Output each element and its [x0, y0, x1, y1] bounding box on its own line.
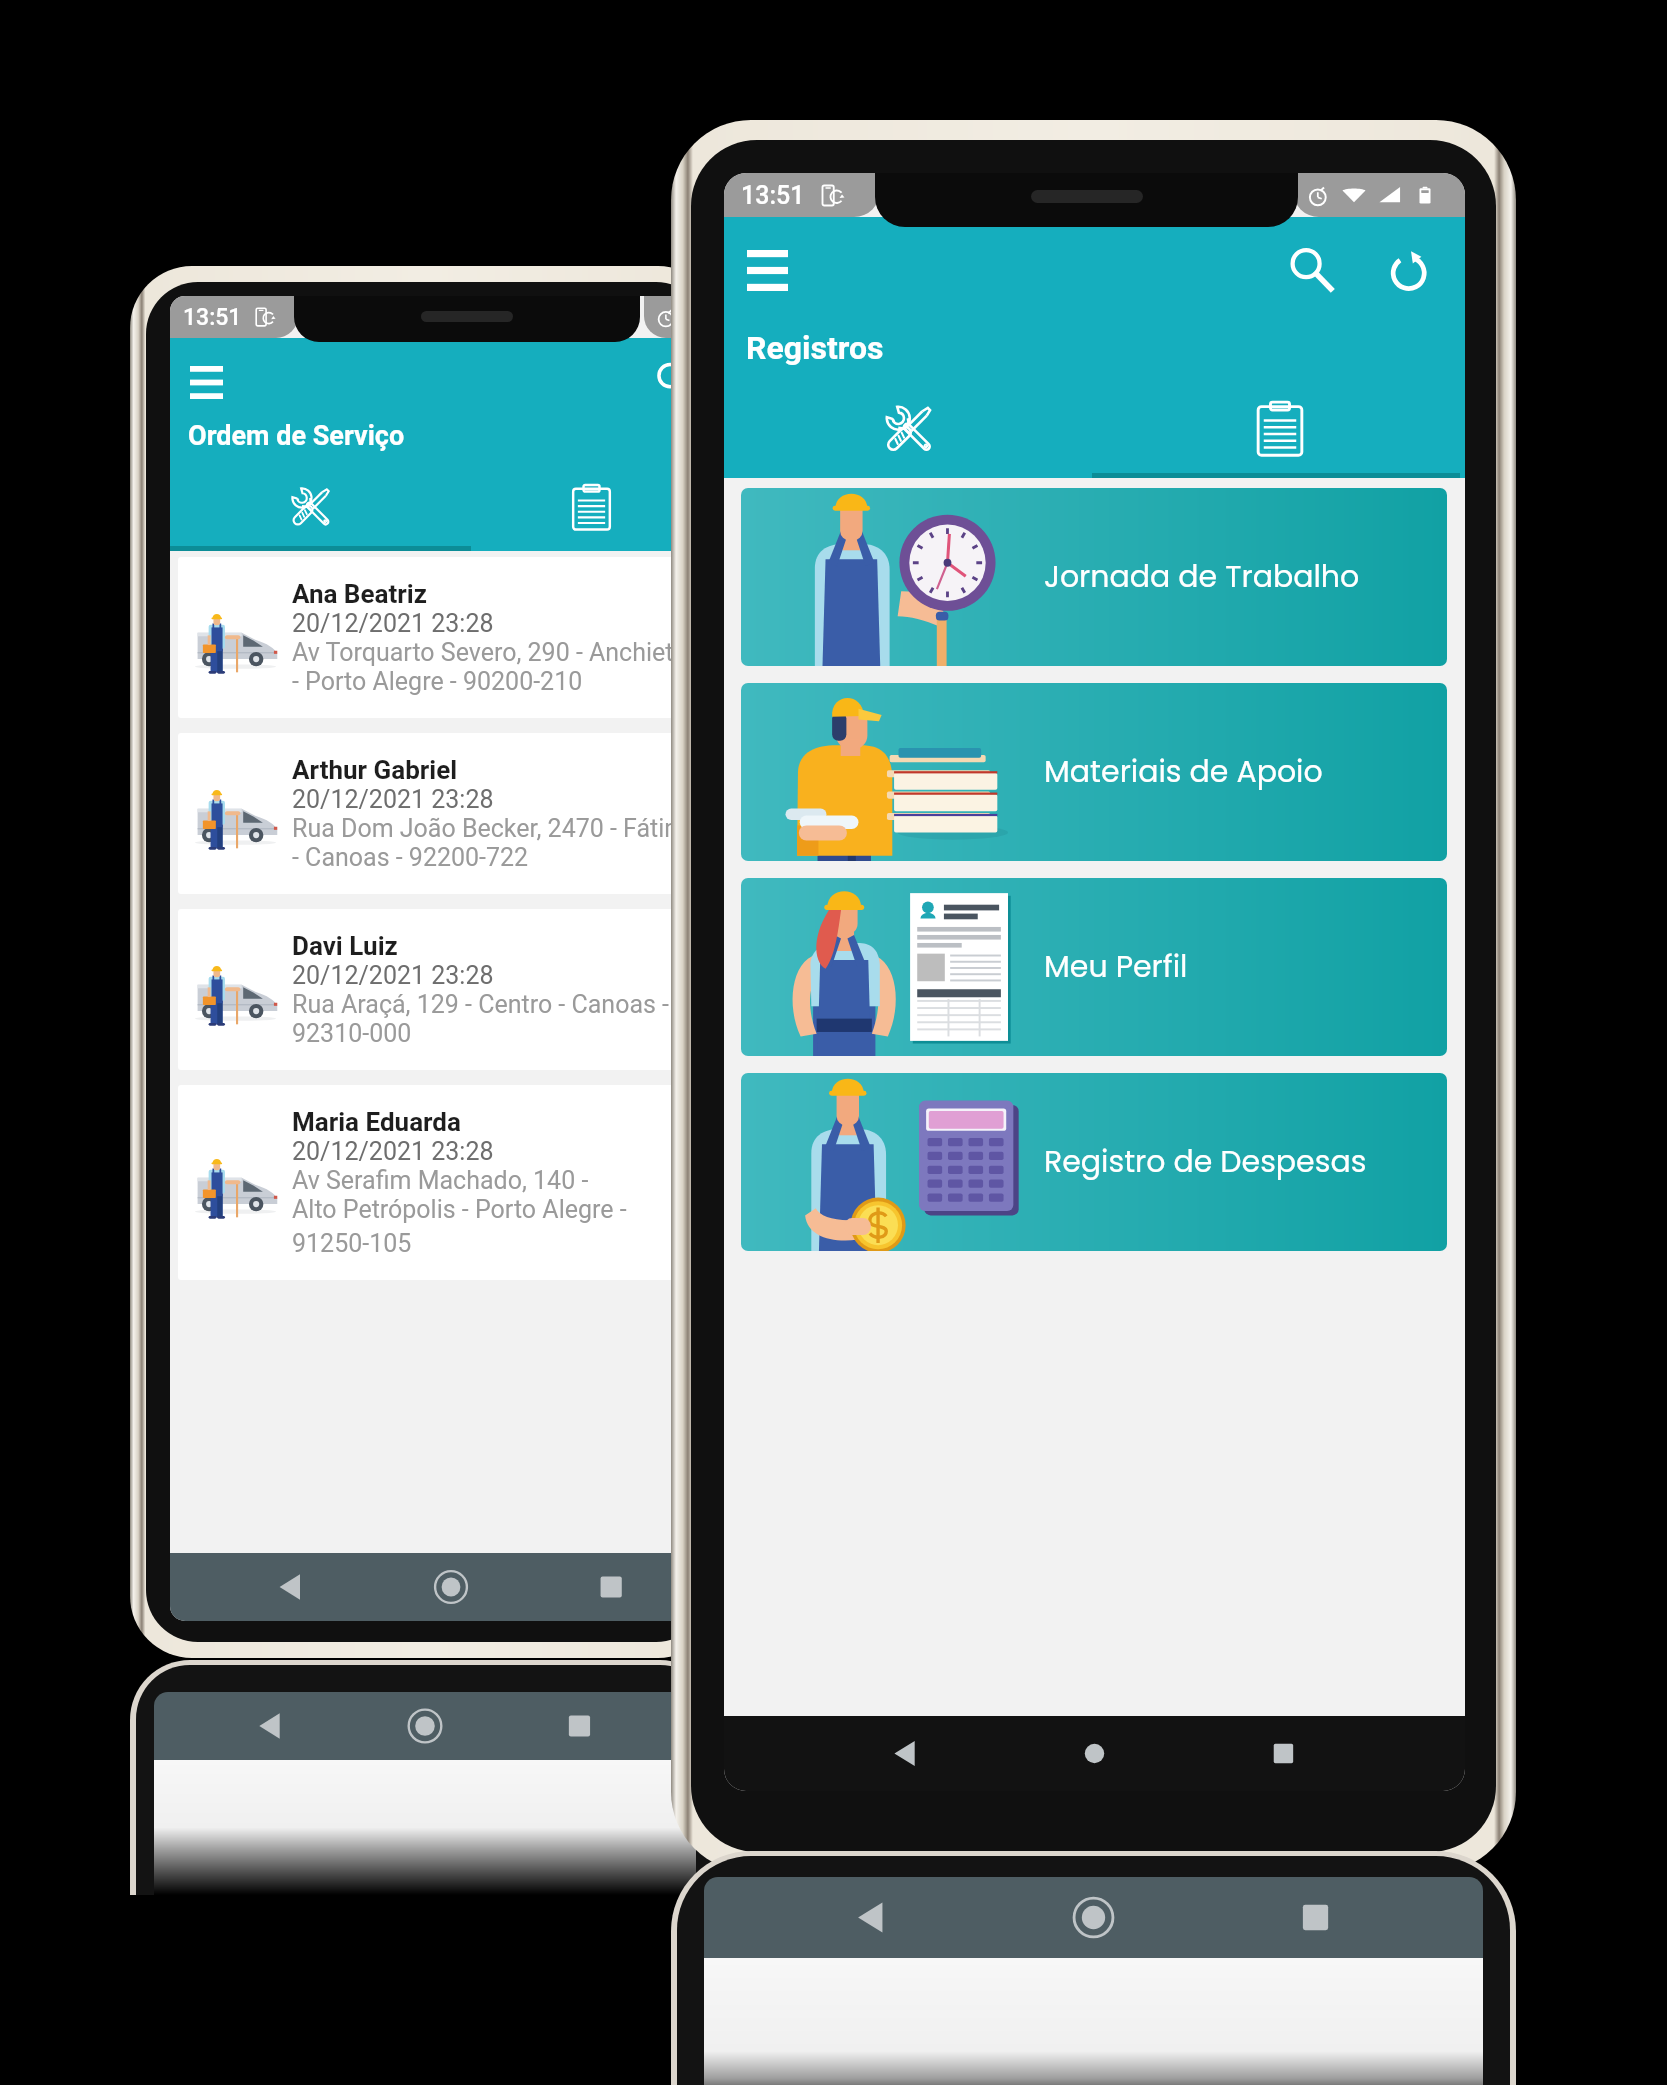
button[interactable]: Registro de Despesas [741, 1073, 1447, 1251]
button[interactable]: Maria Eduarda [178, 1085, 708, 1280]
button[interactable]: Search [644, 350, 704, 410]
button[interactable]: Registros [1094, 385, 1465, 473]
button[interactable]: Meu Perfil [741, 878, 1447, 1056]
staticText: Registros [746, 329, 884, 367]
button[interactable]: Davi Luiz [178, 909, 708, 1070]
staticText: Davi Luiz [292, 931, 398, 961]
staticText: 20/12/2021 23:28 [292, 785, 494, 814]
staticText: Ana Beatriz [292, 579, 427, 609]
staticText: Av Serafim Machado, 140 - [292, 1166, 589, 1195]
staticText: Jornada de Trabalho [1044, 556, 1360, 598]
staticText: 20/12/2021 23:28 [292, 1137, 494, 1166]
staticText: - Canoas - 92200-722 [292, 843, 529, 872]
staticText: Av Torquarto Severo, 290 - Anchieta [292, 638, 688, 667]
button[interactable]: Ana Beatriz [178, 557, 708, 718]
button[interactable]: Ordens de servico [724, 385, 1094, 473]
button[interactable]: Materiais de Apoio [741, 683, 1447, 861]
button[interactable]: Arthur Gabriel [178, 733, 708, 894]
staticText: 92310-000 [292, 1019, 412, 1048]
staticText: 13:51 [183, 304, 242, 331]
staticText: Arthur Gabriel [292, 755, 458, 785]
staticText: Rua Dom João Becker, 2470 - Fátima [292, 814, 700, 843]
button[interactable]: Jornada de Trabalho [741, 488, 1447, 666]
button[interactable]: Refresh [1374, 233, 1446, 305]
staticText: 20/12/2021 23:28 [292, 609, 494, 638]
button[interactable]: Ordens de servico [170, 468, 451, 546]
staticText: 20/12/2021 23:28 [292, 961, 494, 990]
staticText: Meu Perfil [1044, 946, 1188, 988]
staticText: Materiais de Apoio [1044, 751, 1323, 793]
button[interactable]: Menu [734, 237, 800, 303]
button[interactable]: Menu [178, 354, 234, 410]
staticText: Registro de Despesas [1044, 1141, 1367, 1183]
staticText: - Porto Alegre - 90200-210 [292, 667, 583, 696]
staticText: Rua Araçá, 129 - Centro - Canoas - [292, 990, 670, 1019]
button[interactable]: Search [1275, 233, 1347, 305]
button[interactable]: Registros [451, 468, 708, 546]
staticText: Alto Petrópolis - Porto Alegre - 91250-1… [292, 1195, 627, 1258]
staticText: Ordem de Serviço [188, 420, 405, 452]
staticText: Maria Eduarda [292, 1107, 461, 1137]
staticText: 13:51 [741, 181, 805, 210]
